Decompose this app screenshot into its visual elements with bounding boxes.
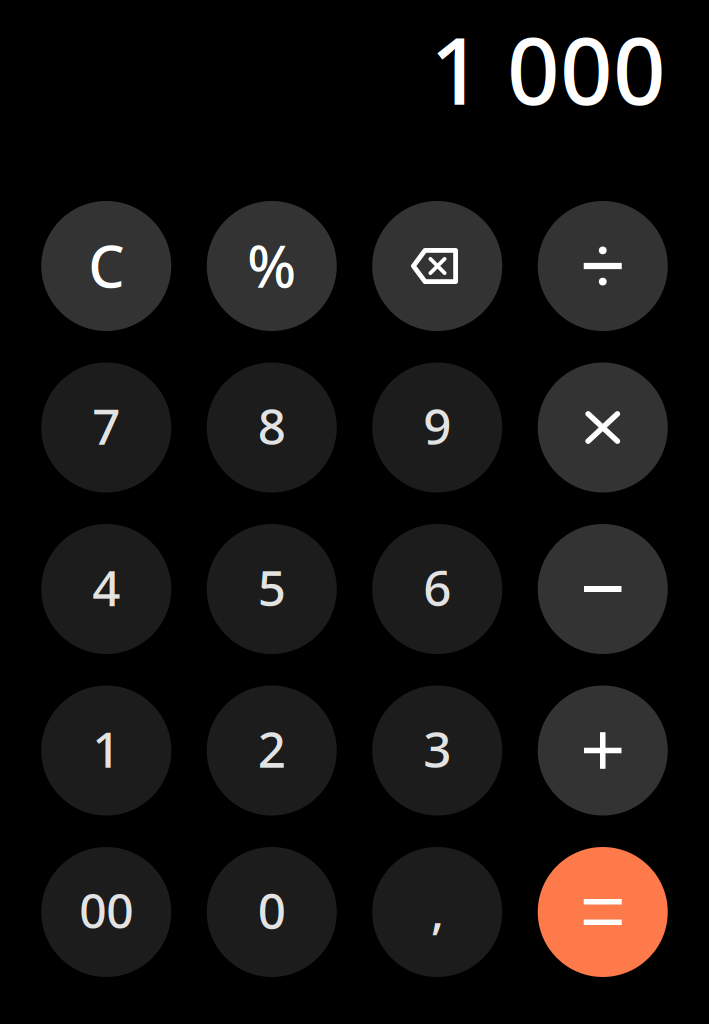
button[interactable]: 4 [41,524,171,654]
staticText: 9 [423,393,451,458]
staticText: 4 [92,554,120,620]
button[interactable]: , [372,847,502,977]
staticText: 3 [423,716,451,781]
button[interactable]: % [207,201,337,331]
button[interactable]: 5 [207,524,337,654]
staticText: 2 [258,716,286,781]
button[interactable]: Subtract [538,524,668,654]
button[interactable]: 3 [372,685,502,815]
button[interactable]: 7 [41,362,171,492]
button[interactable]: 00 [41,847,171,977]
button[interactable]: 6 [372,524,502,654]
staticText: 5 [258,554,286,620]
staticText: 8 [258,393,286,458]
staticText: 1 000 [430,8,666,130]
staticText: , [431,877,444,943]
staticText: 00 [79,878,133,942]
staticText: % [247,227,296,303]
button[interactable]: Multiply [538,362,668,492]
button[interactable]: C [41,201,171,331]
staticText: 6 [423,554,451,620]
button[interactable]: 2 [207,685,337,815]
button[interactable]: Divide [538,201,668,331]
button[interactable]: 9 [372,362,502,492]
button[interactable]: 1 [41,685,171,815]
button[interactable]: Delete [372,201,502,331]
button[interactable]: 8 [207,362,337,492]
staticText: 1 [92,716,120,781]
staticText: C [88,227,124,303]
button[interactable]: Add [538,685,668,815]
button[interactable]: Equals [538,847,668,977]
staticText: 0 [258,877,286,943]
staticText: 7 [92,393,120,458]
button[interactable]: 0 [207,847,337,977]
